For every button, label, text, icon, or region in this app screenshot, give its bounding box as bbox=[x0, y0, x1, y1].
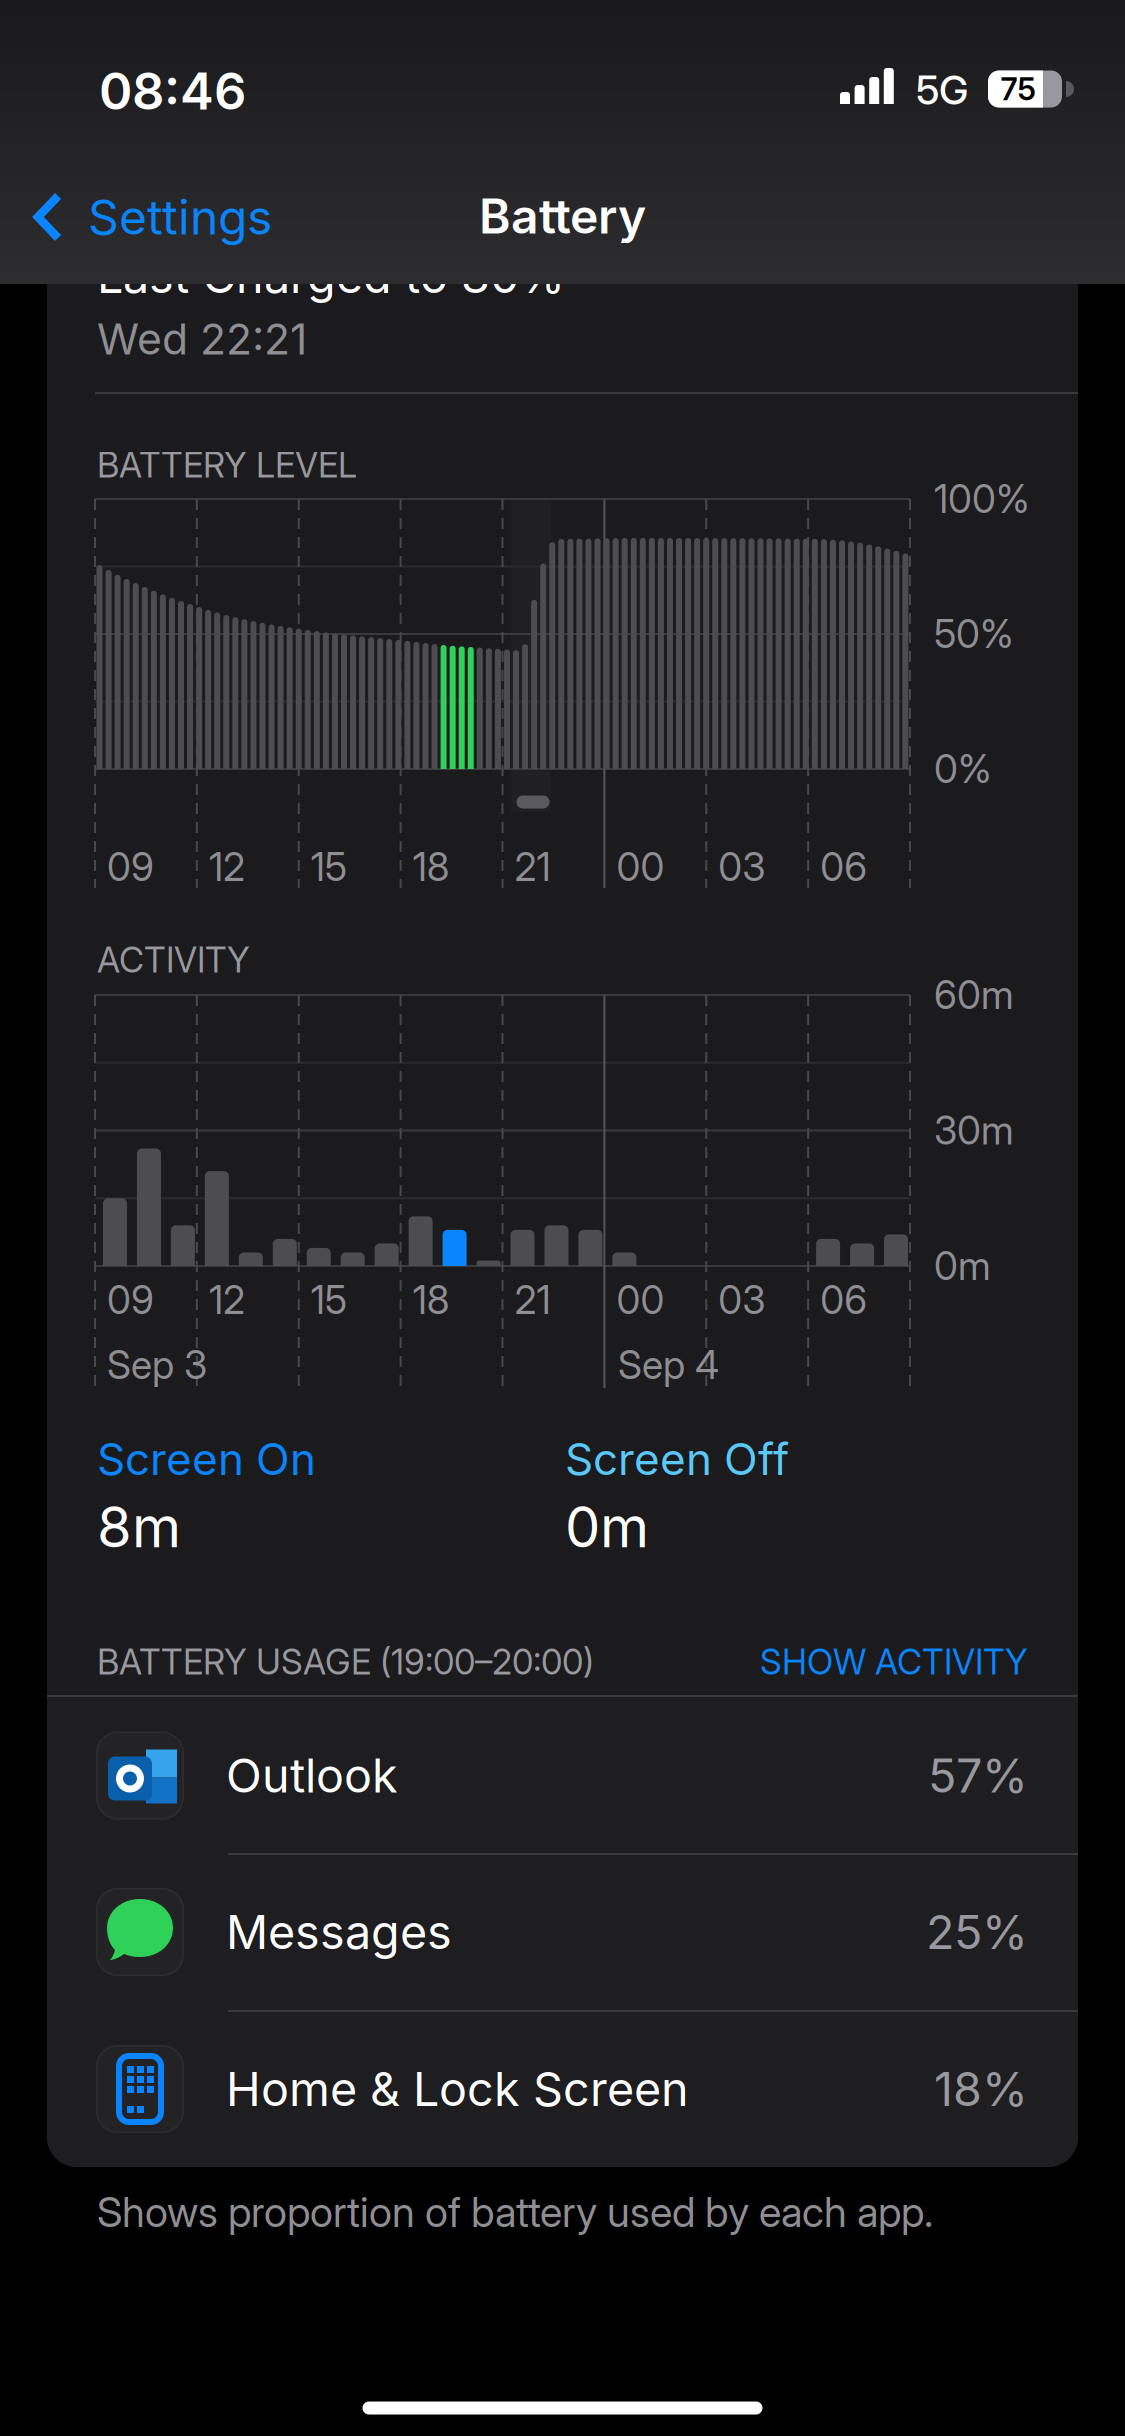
staticText: 100% bbox=[934, 476, 1030, 522]
staticText: 0m bbox=[934, 1243, 991, 1289]
staticText: 5G bbox=[916, 66, 968, 114]
staticText: 09 bbox=[107, 1277, 154, 1323]
staticText: 06 bbox=[820, 844, 867, 890]
staticText: 00 bbox=[616, 844, 664, 890]
staticText: 18 bbox=[413, 844, 450, 890]
staticText: 8m bbox=[97, 1494, 181, 1560]
staticText: Messages bbox=[226, 1904, 452, 1960]
staticText: Home & Lock Screen bbox=[226, 2061, 689, 2117]
button[interactable]: SHOW ACTIVITY bbox=[668, 1642, 1028, 1682]
staticText: 18 bbox=[413, 1277, 450, 1323]
staticText: Screen Off bbox=[565, 1433, 789, 1485]
staticText: 57% bbox=[928, 1748, 1028, 1803]
staticText: Battery bbox=[479, 188, 646, 244]
staticText: Shows proportion of battery used by each… bbox=[97, 2188, 933, 2236]
staticText: BATTERY USAGE (19:00–20:00) bbox=[97, 1642, 594, 1682]
staticText: 25% bbox=[926, 1904, 1028, 1960]
staticText: 12 bbox=[209, 844, 245, 890]
staticText: Sep 3 bbox=[107, 1342, 207, 1388]
staticText: 21 bbox=[514, 844, 550, 890]
staticText: 03 bbox=[718, 1277, 765, 1323]
staticText: Wed 22:21 bbox=[97, 314, 307, 364]
staticText: 60m bbox=[934, 972, 1014, 1018]
button[interactable]: Home & Lock Screen bbox=[47, 2011, 1078, 2167]
staticText: 18% bbox=[934, 2061, 1028, 2117]
staticText: 30m bbox=[934, 1108, 1014, 1153]
staticText: 06 bbox=[820, 1277, 867, 1323]
staticText: 09 bbox=[107, 844, 154, 890]
staticText: 75 bbox=[1000, 71, 1035, 107]
staticText: 00 bbox=[616, 1277, 664, 1323]
staticText: 03 bbox=[718, 844, 765, 890]
staticText: 08:46 bbox=[99, 61, 246, 121]
staticText: Settings bbox=[88, 189, 272, 245]
staticText: 15 bbox=[311, 844, 347, 890]
staticText: 0% bbox=[934, 746, 992, 792]
staticText: ACTIVITY bbox=[97, 940, 250, 980]
staticText: Last Charged to 80% bbox=[97, 248, 565, 304]
staticText: 0m bbox=[565, 1494, 649, 1560]
staticText: 21 bbox=[514, 1277, 550, 1323]
button[interactable]: Outlook bbox=[47, 1697, 1078, 1853]
staticText: Outlook bbox=[226, 1748, 398, 1803]
staticText: Sep 4 bbox=[618, 1342, 719, 1388]
staticText: 12 bbox=[209, 1277, 245, 1323]
button[interactable]: Back bbox=[32, 162, 432, 272]
staticText: 50% bbox=[934, 611, 1014, 657]
button[interactable]: Messages bbox=[47, 1854, 1078, 2010]
staticText: 15 bbox=[311, 1277, 347, 1323]
staticText: Screen On bbox=[97, 1433, 316, 1485]
staticText: SHOW ACTIVITY bbox=[760, 1642, 1028, 1682]
staticText: BATTERY LEVEL bbox=[97, 445, 357, 485]
